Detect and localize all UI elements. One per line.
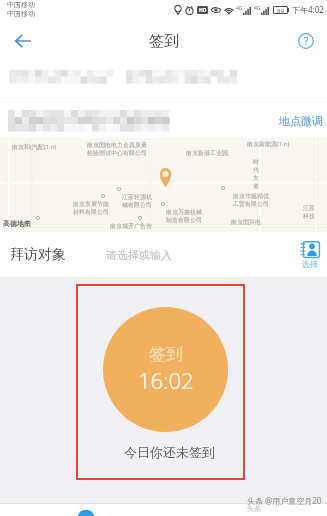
staticText: 制造有限公司	[166, 216, 202, 224]
staticText: 代	[253, 166, 259, 174]
button[interactable]: Home	[78, 510, 94, 516]
staticText: 江苏轻源机	[122, 193, 152, 201]
staticText: 南京发展节能	[73, 200, 109, 208]
staticText: 南京城开广告传	[110, 222, 152, 230]
staticText: 选择	[302, 259, 318, 269]
staticText: 械有限公司	[122, 201, 152, 209]
staticText: 拜访对象	[10, 246, 66, 264]
staticText: 中国移动	[7, 0, 35, 9]
staticText: ?	[304, 34, 309, 48]
staticText: 材料有限公司	[73, 208, 109, 216]
button[interactable]: Help	[291, 26, 321, 56]
staticText: 签到	[149, 32, 179, 51]
staticText: 南京万鑫机械	[166, 208, 202, 216]
staticText: 工贸有限公司	[233, 200, 269, 208]
staticText: 89	[277, 7, 284, 13]
staticText: 南京和(汽配(1.n)	[12, 143, 57, 151]
staticText: 高德地图	[3, 219, 31, 228]
staticText: 4G	[254, 5, 261, 12]
staticText: 16:02	[138, 365, 194, 395]
staticText: 南京新能源(1.n)	[247, 140, 290, 148]
staticText: HD	[199, 7, 207, 14]
staticText: 请选择或输入	[106, 248, 172, 262]
staticText: 南京华越精优	[233, 192, 269, 200]
staticText: 检验测试中心有限公司	[87, 149, 147, 157]
button[interactable]: 选择	[300, 241, 320, 269]
staticText: 道	[253, 182, 259, 190]
staticText: 中国移动	[7, 9, 35, 18]
staticText: 科技	[303, 212, 315, 220]
staticText: 头条	[247, 504, 261, 513]
staticText: 今日你还未签到	[124, 444, 215, 460]
button[interactable]: Back	[6, 24, 40, 58]
staticText: 南京国电电力金具质量	[87, 141, 147, 149]
staticText: 南京新港工业园	[186, 149, 228, 157]
staticText: 签到	[149, 344, 183, 365]
staticText: 江苏	[303, 204, 315, 212]
staticText: 下午4:02	[292, 4, 324, 15]
staticText: 大	[253, 174, 259, 182]
staticText: 南京国兴电	[231, 218, 261, 226]
button[interactable]: 签到	[103, 307, 228, 432]
button[interactable]: 地点微调	[279, 114, 323, 128]
staticText: 4G	[236, 5, 243, 12]
staticText: 头条 @用户童空月20	[247, 495, 322, 506]
staticText: 时	[253, 158, 259, 166]
